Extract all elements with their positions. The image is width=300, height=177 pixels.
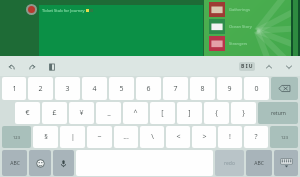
staticText: 7 [173, 84, 178, 94]
button[interactable]: Ocean Story [209, 19, 252, 34]
button[interactable]: | [60, 126, 85, 148]
button[interactable]: 8 [190, 77, 215, 100]
button[interactable]: 0 [244, 77, 269, 100]
staticText: £ [52, 108, 57, 118]
button[interactable]: 9 [217, 77, 242, 100]
staticText: Gatherings [229, 7, 250, 12]
staticText: | [71, 132, 75, 142]
staticText: 4 [92, 84, 97, 94]
button[interactable]: > [192, 126, 216, 148]
button[interactable]: ... [114, 126, 138, 148]
button[interactable]: ABC [246, 150, 272, 176]
button[interactable]: redo [215, 150, 244, 176]
button[interactable]: ! [218, 126, 242, 148]
staticText: 8 [200, 84, 205, 94]
button[interactable]: 1 [2, 77, 26, 100]
button[interactable]: Voice input [53, 150, 74, 176]
button[interactable]: B I U [241, 63, 253, 70]
button[interactable]: Previous [263, 61, 274, 72]
staticText: [ [161, 108, 164, 118]
button[interactable]: € [15, 102, 40, 124]
staticText: 123 [13, 135, 20, 140]
button[interactable]: ABC [2, 150, 27, 176]
button[interactable]: 6 [136, 77, 161, 100]
staticText: ! [229, 132, 231, 142]
button[interactable]: ] [177, 102, 202, 124]
staticText: 0 [254, 84, 259, 94]
button[interactable]: 4 [82, 77, 107, 100]
button[interactable]: 7 [163, 77, 188, 100]
button[interactable]: \ [140, 126, 164, 148]
button[interactable]: ¥ [69, 102, 94, 124]
button[interactable]: < [166, 126, 190, 148]
button[interactable]: Emoji [29, 150, 51, 176]
staticText: § [44, 132, 48, 142]
button[interactable]: Ticket Stub for Journey [39, 5, 203, 61]
staticText: return [271, 110, 286, 117]
staticText: Ocean Story [229, 24, 252, 29]
staticText: B I U [241, 63, 253, 70]
staticText: Ticket Stub for Journey [42, 8, 85, 13]
button[interactable]: } [231, 102, 256, 124]
button[interactable]: Strangers [209, 36, 248, 51]
button[interactable]: 3 [55, 77, 80, 100]
staticText: 123 [281, 135, 288, 140]
staticText: ] [188, 108, 191, 118]
button[interactable]: 123 [270, 126, 298, 148]
staticText: 9 [227, 84, 232, 94]
staticText: 2 [38, 84, 43, 94]
staticText: ABC [10, 160, 20, 167]
button[interactable]: Profile [26, 4, 37, 15]
button[interactable]: 2 [28, 77, 53, 100]
button[interactable]: Redo [26, 61, 37, 72]
button[interactable]: £ [42, 102, 67, 124]
button[interactable]: return [258, 102, 298, 124]
button[interactable]: Undo [6, 61, 17, 72]
button[interactable]: [ [150, 102, 175, 124]
button[interactable]: Gatherings [209, 2, 250, 17]
staticText: € [25, 108, 30, 118]
staticText: 6 [146, 84, 151, 94]
button[interactable]: § [33, 126, 58, 148]
staticText: \ [151, 132, 154, 142]
staticText: < [176, 132, 181, 142]
staticText: { [215, 108, 218, 118]
button[interactable]: _ [96, 102, 121, 124]
button[interactable]: ~ [87, 126, 112, 148]
staticText: 5 [119, 84, 124, 94]
staticText: _ [107, 108, 111, 118]
button[interactable]: ? [244, 126, 268, 148]
staticText: > [202, 132, 207, 142]
button[interactable]: 5 [109, 77, 134, 100]
button[interactable]: ^ [123, 102, 148, 124]
staticText: ^ [133, 108, 138, 118]
staticText: ¥ [79, 108, 84, 118]
button[interactable]: Backspace [271, 77, 298, 100]
button[interactable]: 123 [2, 126, 31, 148]
staticText: Strangers [229, 41, 248, 46]
button[interactable]: Next [283, 61, 294, 72]
staticText: ~ [97, 132, 102, 142]
staticText: redo [224, 160, 235, 167]
staticText: 1 [12, 84, 17, 94]
button[interactable]: Paste [46, 61, 57, 72]
staticText: } [242, 108, 245, 118]
button[interactable]: { [204, 102, 229, 124]
staticText: ? [254, 132, 258, 142]
staticText: ... [123, 132, 129, 142]
staticText: 3 [65, 84, 70, 94]
button[interactable]: Hide keyboard [274, 150, 298, 176]
staticText: ABC [254, 160, 264, 167]
